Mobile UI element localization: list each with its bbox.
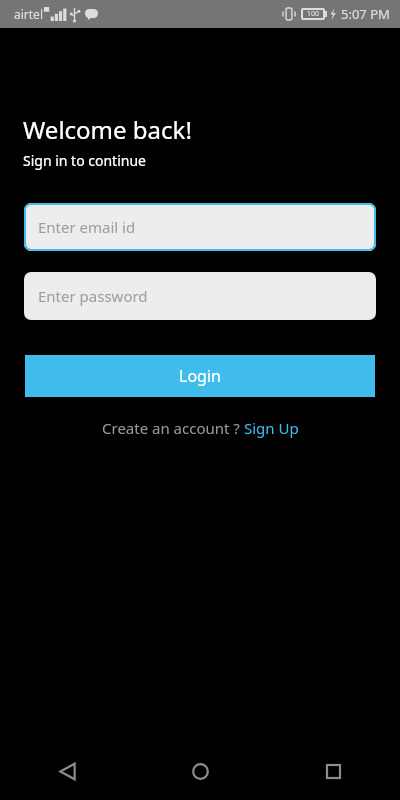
button[interactable]: Recent apps <box>267 742 400 800</box>
button[interactable]: Login <box>25 355 375 397</box>
staticText: Create an account ? <box>102 418 244 438</box>
staticText: Welcome back! <box>23 113 192 146</box>
staticText: Login <box>179 365 221 387</box>
staticText: airtel <box>14 6 43 22</box>
staticText: Sign in to continue <box>23 151 146 170</box>
button[interactable]: Enter password <box>24 272 376 320</box>
staticText: Enter email id <box>38 217 136 237</box>
button[interactable]: Enter email id <box>24 203 376 251</box>
button[interactable]: Back <box>0 742 134 800</box>
staticText: 5:07 PM <box>341 5 390 23</box>
staticText: Enter password <box>38 286 148 306</box>
button[interactable]: Sign Up <box>244 418 299 438</box>
staticText: 100 <box>307 9 320 19</box>
staticText: Sign Up <box>244 418 299 438</box>
button[interactable]: Home <box>134 742 267 800</box>
